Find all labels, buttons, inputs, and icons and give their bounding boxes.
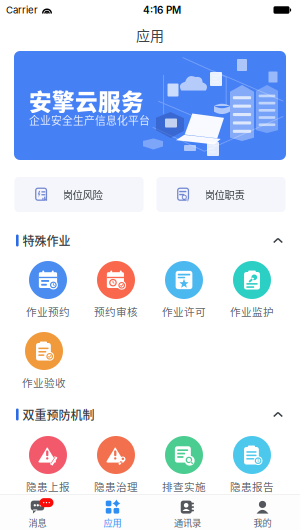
staticText: 隐患上报 [26, 479, 70, 494]
button[interactable]: 消息 [0, 501, 75, 528]
button[interactable]: 我的 [225, 501, 300, 528]
staticText: Carrier [6, 4, 38, 16]
staticText: 岗位风险 [62, 187, 102, 202]
staticText: 通讯录 [174, 516, 201, 529]
staticText: 作业预约 [26, 304, 70, 319]
staticText: 我的 [253, 516, 271, 529]
staticText: 隐患治理 [94, 479, 138, 494]
staticText: 消息 [28, 516, 46, 529]
staticText: 预约审核 [94, 304, 138, 319]
staticText: 作业验收 [22, 375, 66, 390]
staticText: 排查实施 [162, 479, 206, 494]
button[interactable]: 排查实施 [150, 436, 218, 492]
button[interactable]: 隐患报告 [218, 436, 286, 492]
button[interactable]: 特殊作业 [0, 234, 300, 247]
button[interactable]: 通讯录 [150, 501, 225, 528]
button[interactable]: 岗位职责 [156, 177, 285, 212]
staticText: 安擎云服务 [29, 84, 144, 117]
button[interactable]: 隐患治理 [82, 436, 150, 492]
button[interactable]: 岗位风险 [14, 177, 143, 212]
staticText: 4:16 PM [143, 4, 181, 16]
staticText: 隐患报告 [230, 479, 274, 494]
staticText: 应用 [103, 516, 121, 529]
button[interactable]: 应用 [75, 501, 150, 528]
button[interactable]: 作业验收 [10, 332, 78, 388]
staticText: 作业监护 [230, 304, 274, 319]
button[interactable]: 作业预约 [14, 261, 82, 317]
button[interactable]: 双重预防机制 [0, 408, 300, 421]
button[interactable]: 作业许可 [150, 261, 218, 317]
button[interactable]: 隐患上报 [14, 436, 82, 492]
button[interactable]: 预约审核 [82, 261, 150, 317]
staticText: 应用 [136, 25, 164, 45]
button[interactable]: 作业监护 [218, 261, 286, 317]
staticText: 岗位职责 [204, 187, 244, 202]
staticText: 企业安全生产信息化平台 [29, 112, 150, 128]
staticText: 特殊作业 [23, 232, 71, 249]
staticText: 作业许可 [162, 304, 206, 319]
staticText: 双重预防机制 [23, 406, 95, 423]
